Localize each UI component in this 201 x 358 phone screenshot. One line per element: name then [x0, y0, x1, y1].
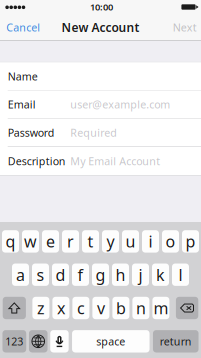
staticText: Name	[8, 69, 38, 83]
staticText: h	[115, 264, 125, 285]
staticText: return	[160, 334, 192, 348]
staticText: e	[46, 231, 55, 252]
staticText: r	[67, 231, 74, 252]
staticText: m	[153, 297, 168, 319]
button[interactable]: m	[152, 297, 169, 319]
button[interactable]: return	[153, 330, 199, 352]
staticText: space	[96, 334, 125, 348]
staticText: 123	[5, 334, 23, 348]
button[interactable]: y	[102, 230, 119, 253]
staticText: i	[148, 231, 152, 252]
staticText: t	[87, 231, 93, 252]
button[interactable]: j	[132, 263, 149, 286]
button[interactable]: Description	[0, 147, 201, 175]
staticText: p	[185, 231, 195, 252]
button[interactable]: x	[52, 297, 69, 319]
button[interactable]: o	[162, 230, 179, 253]
button[interactable]: Shift	[3, 297, 26, 319]
button[interactable]: q	[2, 230, 19, 253]
staticText: Next	[173, 20, 197, 34]
button[interactable]: a	[12, 263, 29, 286]
button[interactable]: s	[32, 263, 49, 286]
button[interactable]: f	[72, 263, 89, 286]
staticText: c	[77, 297, 85, 319]
staticText: Cancel	[6, 20, 40, 34]
staticText: z	[37, 297, 45, 319]
staticText: l	[178, 264, 182, 285]
staticText: b	[116, 297, 126, 319]
staticText: q	[5, 231, 15, 252]
staticText: Description	[8, 154, 66, 168]
button[interactable]: Cancel	[0, 14, 47, 40]
button[interactable]: w	[22, 230, 39, 253]
button[interactable]: v	[92, 297, 109, 319]
button[interactable]: space	[72, 330, 149, 352]
staticText: o	[165, 231, 175, 252]
staticText: v	[97, 297, 105, 319]
staticText: d	[55, 264, 65, 285]
staticText: u	[125, 231, 135, 252]
staticText: w	[24, 231, 37, 252]
button[interactable]: Next keyboard	[29, 330, 47, 352]
button[interactable]: i	[142, 230, 159, 253]
staticText: My Email Account	[70, 154, 160, 168]
button[interactable]: Dictation	[50, 330, 69, 352]
staticText: g	[95, 264, 105, 285]
button[interactable]: c	[72, 297, 89, 319]
staticText: n	[136, 297, 146, 319]
staticText: j	[138, 264, 142, 285]
staticText: Email	[8, 97, 36, 112]
button[interactable]: u	[122, 230, 139, 253]
staticText: New Account	[61, 19, 139, 35]
staticText: 10:00	[90, 1, 113, 13]
button[interactable]: h	[112, 263, 129, 286]
button[interactable]: Password	[0, 119, 201, 147]
button[interactable]: k	[152, 263, 169, 286]
button[interactable]: z	[32, 297, 49, 319]
button[interactable]: b	[112, 297, 129, 319]
staticText: Password	[8, 126, 55, 140]
button[interactable]: Email	[0, 91, 201, 119]
staticText: s	[36, 264, 44, 285]
button[interactable]: g	[92, 263, 109, 286]
staticText: user@example.com	[70, 97, 170, 112]
button[interactable]: 123	[2, 330, 26, 352]
button[interactable]: p	[182, 230, 199, 253]
staticText: x	[57, 297, 65, 319]
staticText: a	[16, 264, 25, 285]
button[interactable]: n	[132, 297, 149, 319]
button[interactable]: Delete	[176, 297, 198, 319]
staticText: Required	[70, 126, 117, 140]
staticText: f	[77, 264, 83, 285]
button[interactable]: t	[82, 230, 99, 253]
button[interactable]: r	[62, 230, 79, 253]
button[interactable]: d	[52, 263, 69, 286]
button[interactable]: e	[42, 230, 59, 253]
staticText: y	[106, 231, 114, 252]
button[interactable]: Next	[169, 14, 201, 40]
button[interactable]: Name	[0, 62, 201, 91]
staticText: k	[156, 264, 165, 285]
button[interactable]: l	[172, 263, 189, 286]
